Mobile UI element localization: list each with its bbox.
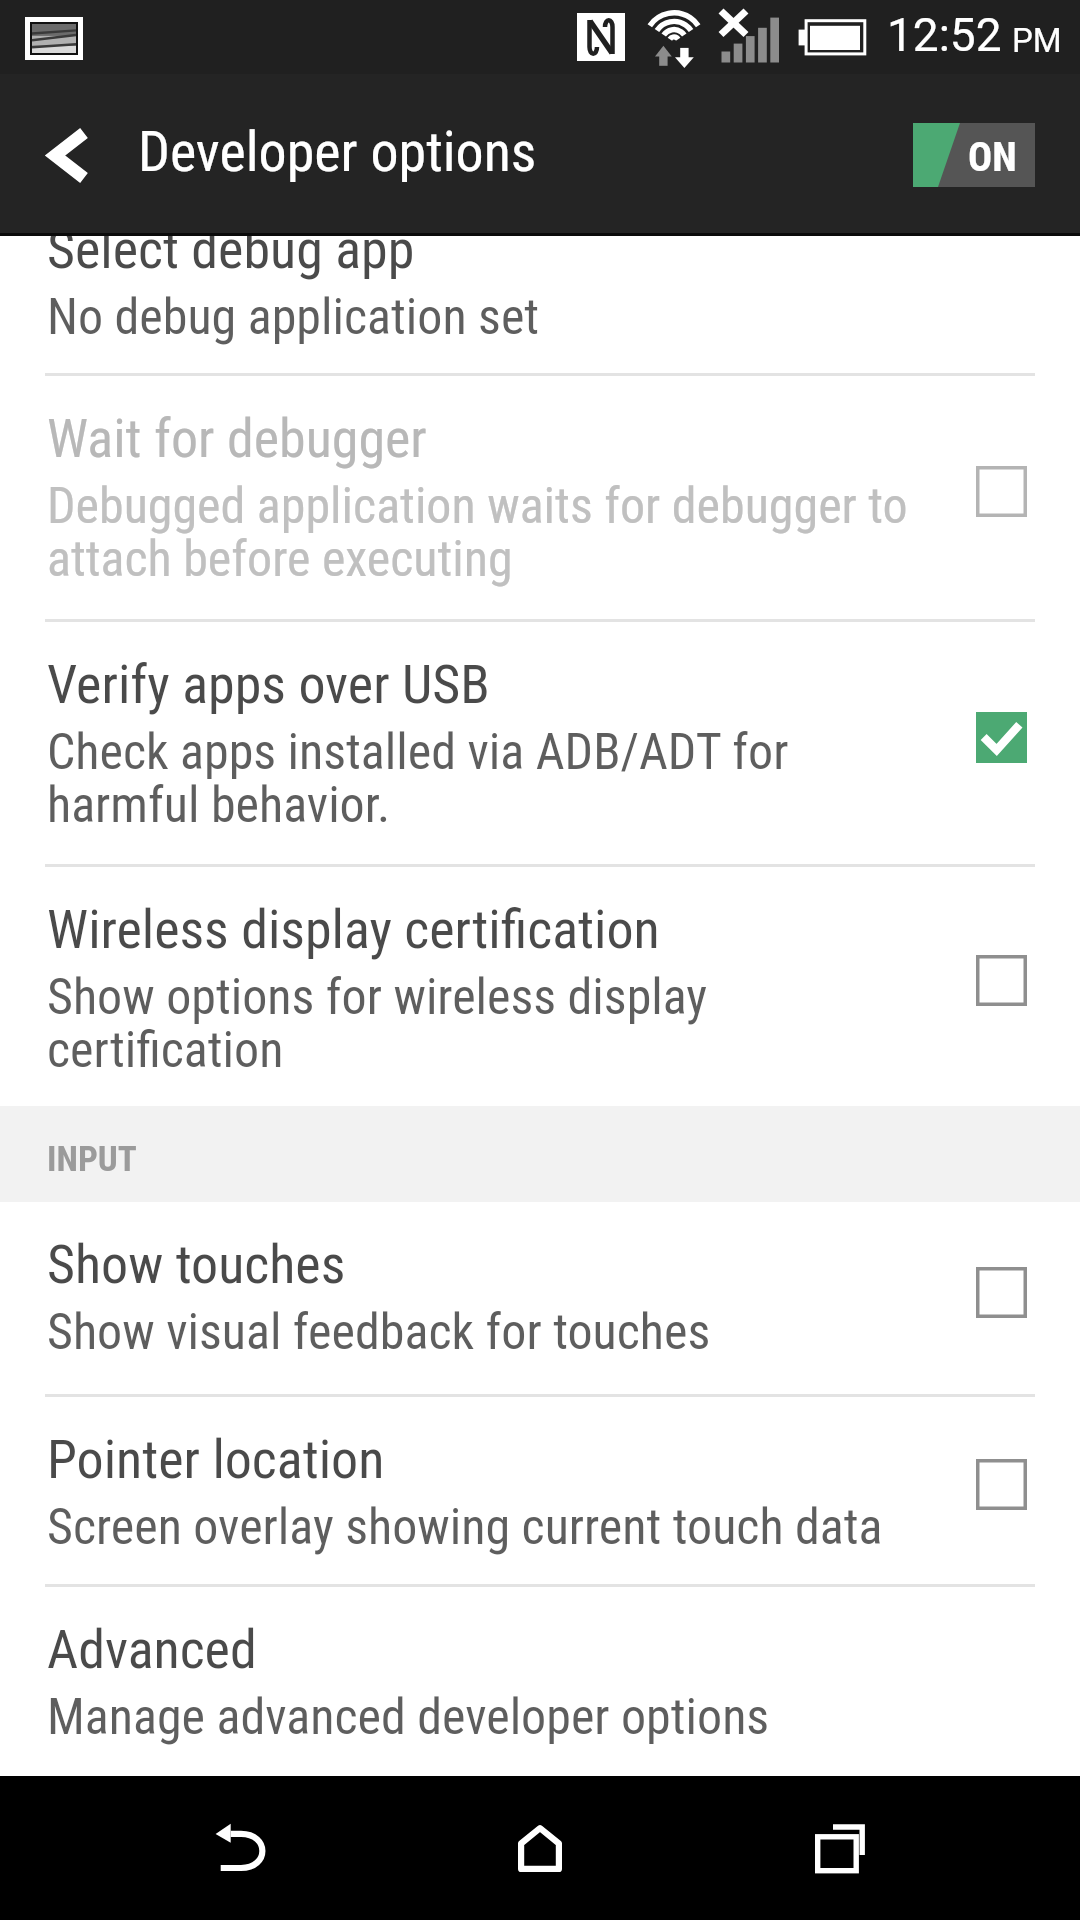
staticText: Pointer location	[47, 1428, 385, 1491]
staticText: Wait for debugger	[47, 407, 427, 470]
staticText: Debugged application waits for debugger …	[47, 477, 908, 588]
button[interactable]: Show touches	[922, 1202, 1080, 1394]
staticText: INPUT	[47, 1139, 137, 1180]
button[interactable]: Navigate up	[0, 74, 136, 236]
staticText: Select debug app	[47, 218, 415, 281]
staticText: Screen overlay showing current touch dat…	[47, 1498, 883, 1557]
staticText: Show visual feedback for touches	[47, 1303, 711, 1362]
staticText: Advanced	[47, 1618, 257, 1681]
button[interactable]: Wireless display certification	[0, 867, 1080, 1106]
button[interactable]: Wait for debugger	[922, 376, 1080, 619]
staticText: 12:52	[887, 8, 1002, 62]
staticText: Show options for wireless display certif…	[47, 968, 708, 1079]
button[interactable]: Home	[480, 1776, 600, 1920]
button[interactable]: Select debug app	[0, 230, 1080, 373]
button[interactable]: Pointer location	[922, 1397, 1080, 1584]
staticText: Manage advanced developer options	[47, 1688, 770, 1747]
staticText: Wireless display certification	[47, 898, 660, 961]
button[interactable]: Verify apps over USB	[0, 622, 1080, 864]
button[interactable]: Wait for debugger	[0, 376, 1080, 619]
staticText: Developer options	[138, 119, 537, 185]
staticText: No debug application set	[47, 288, 540, 347]
button[interactable]: Wireless display certification	[922, 867, 1080, 1106]
button[interactable]: Pointer location	[0, 1397, 1080, 1584]
staticText: PM	[1012, 21, 1062, 60]
staticText: Check apps installed via ADB/ADT for har…	[47, 723, 789, 834]
button[interactable]: Back	[177, 1776, 297, 1920]
staticText: Verify apps over USB	[47, 653, 490, 716]
button[interactable]: Recent apps	[780, 1776, 900, 1920]
button[interactable]: Verify apps over USB	[922, 622, 1080, 864]
button[interactable]: Advanced	[0, 1587, 1080, 1776]
button[interactable]: Show touches	[0, 1202, 1080, 1394]
staticText: Show touches	[47, 1233, 346, 1296]
staticText: ON	[968, 134, 1017, 181]
button[interactable]: Developer options toggle, on	[913, 123, 1035, 187]
